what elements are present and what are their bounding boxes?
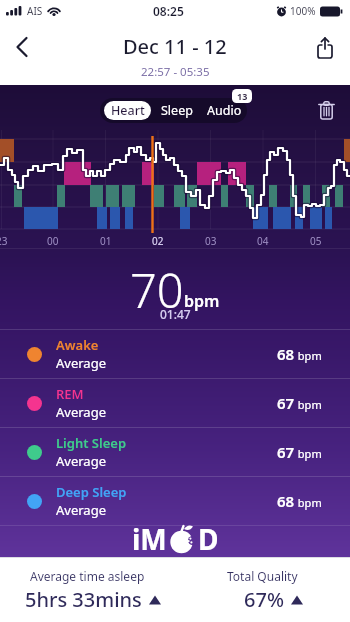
staticText: 67	[277, 442, 295, 462]
staticText: Total Quality	[227, 568, 298, 584]
staticText: bpm	[184, 290, 220, 312]
button[interactable]	[308, 32, 342, 64]
staticText: 01	[100, 234, 112, 248]
staticText: iM	[132, 520, 167, 558]
staticText: Audio	[207, 102, 242, 119]
staticText: Average	[56, 452, 106, 470]
staticText: Light Sleep	[56, 434, 127, 452]
staticText: Dec 11 - 12	[123, 33, 227, 59]
staticText: bpm	[295, 348, 322, 363]
staticText: 68	[277, 491, 295, 511]
staticText: 01:47	[160, 306, 191, 322]
button[interactable]: Deep Sleep	[0, 477, 350, 525]
button[interactable]: Total Quality	[175, 557, 350, 622]
staticText: D	[198, 520, 219, 558]
staticText: 08:25	[153, 3, 184, 19]
button[interactable]: Sleep	[159, 100, 195, 121]
staticText: Awake	[56, 336, 99, 354]
button[interactable]: Heart	[104, 101, 151, 120]
staticText: 05	[310, 234, 322, 248]
staticText: AIS	[27, 4, 43, 18]
staticText: bpm	[295, 495, 322, 510]
staticText: 67%	[244, 586, 284, 613]
staticText: Sleep	[161, 102, 193, 119]
staticText: bpm	[295, 397, 322, 412]
staticText: 5hrs 33mins	[25, 586, 142, 613]
button[interactable]: Audio	[205, 100, 244, 121]
staticText: REM	[56, 385, 84, 403]
staticText: bpm	[295, 446, 322, 461]
button[interactable]	[4, 32, 40, 62]
staticText: 68	[277, 344, 295, 364]
staticText: Average	[56, 403, 106, 421]
staticText: Average	[56, 501, 106, 519]
staticText: 70	[130, 258, 184, 322]
button[interactable]: Average time asleep	[0, 557, 175, 622]
staticText: 67	[277, 393, 295, 413]
staticText: 100%	[290, 4, 316, 18]
staticText: Average time asleep	[30, 568, 145, 584]
staticText: 23	[0, 234, 8, 248]
button[interactable]: REM	[0, 379, 350, 427]
staticText: 04	[257, 234, 269, 248]
button[interactable]: Awake	[0, 330, 350, 378]
staticText: 13	[237, 90, 248, 102]
staticText: Average	[56, 354, 106, 372]
staticText: Deep Sleep	[56, 483, 127, 501]
button[interactable]: Light Sleep	[0, 428, 350, 476]
staticText: 22:57 - 05:35	[141, 64, 210, 80]
staticText: 00	[47, 234, 59, 248]
staticText: 03	[205, 234, 217, 248]
button[interactable]	[312, 96, 340, 124]
staticText: Heart	[111, 102, 145, 119]
staticText: 02	[152, 234, 164, 248]
